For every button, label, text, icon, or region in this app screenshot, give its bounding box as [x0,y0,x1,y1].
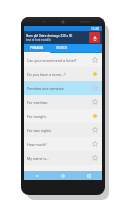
button[interactable]: For tonight. [24,109,102,123]
button[interactable]: Add to favourites [90,125,100,135]
button[interactable]: Add to favourites [90,55,100,65]
staticText: WORDS [56,46,68,50]
button[interactable]: Can you recommend a hotel? [24,53,102,67]
staticText: My name is... [27,156,90,161]
button[interactable]: Add to favourites [90,153,100,163]
button[interactable]: Recent apps [76,171,102,180]
button[interactable]: How much? [24,137,102,151]
staticText: For one/two [27,100,90,105]
staticText: Can you recommend a hotel? [27,58,90,63]
button[interactable]: Home [50,171,76,180]
staticText: Do you have a room...? [27,72,90,77]
button[interactable]: PHRASES [24,44,50,52]
button[interactable]: Remove from favourites [90,111,100,121]
button[interactable]: Nom pb! Votre drainage 320 x 50 [24,31,102,44]
staticText: Pendant une semaine [27,86,90,91]
button[interactable]: For one/two [24,95,102,109]
button[interactable]: For two nights [24,123,102,137]
button[interactable]: Add to favourites [90,139,100,149]
button[interactable]: Add to favourites [90,83,100,93]
button[interactable]: My name is... [24,151,102,165]
button[interactable]: Advertisement app icon [89,32,100,43]
button[interactable]: Remove from favourites [90,69,100,79]
button[interactable]: Back [24,171,50,180]
staticText: For two nights [27,128,90,133]
staticText: Nom pb! Votre drainage 320 x 50 [26,34,73,38]
staticText: test et font installé. [26,38,52,42]
staticText: How much? [27,142,90,147]
staticText: 13:38 [91,27,100,31]
button[interactable]: WORDS [50,44,74,52]
button[interactable]: Do you have a room...? [24,67,102,81]
staticText: For tonight. [27,114,90,119]
button[interactable]: Add to favourites [90,97,100,107]
staticText: PHRASES [30,46,44,50]
button[interactable]: Pendant une semaine [24,81,102,95]
